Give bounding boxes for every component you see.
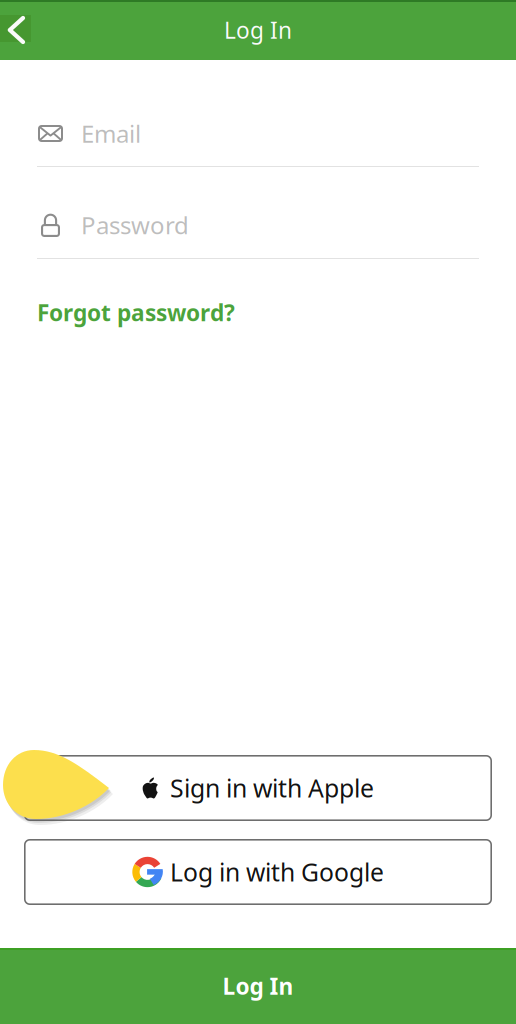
button[interactable]: Forgot password? bbox=[37, 297, 235, 327]
staticText: Sign in with Apple bbox=[170, 771, 374, 805]
staticText: Log In bbox=[224, 15, 292, 45]
button[interactable]: Log In bbox=[0, 948, 516, 1024]
staticText: Log In bbox=[222, 971, 293, 1001]
staticText: Email bbox=[81, 118, 141, 149]
button[interactable]: Log in with Google bbox=[24, 839, 492, 905]
staticText: Log in with Google bbox=[170, 855, 384, 889]
button[interactable]: Sign in with Apple bbox=[24, 755, 492, 821]
staticText: Password bbox=[81, 209, 189, 241]
staticText: Forgot password? bbox=[37, 297, 235, 327]
button[interactable]: Back bbox=[0, 15, 31, 42]
